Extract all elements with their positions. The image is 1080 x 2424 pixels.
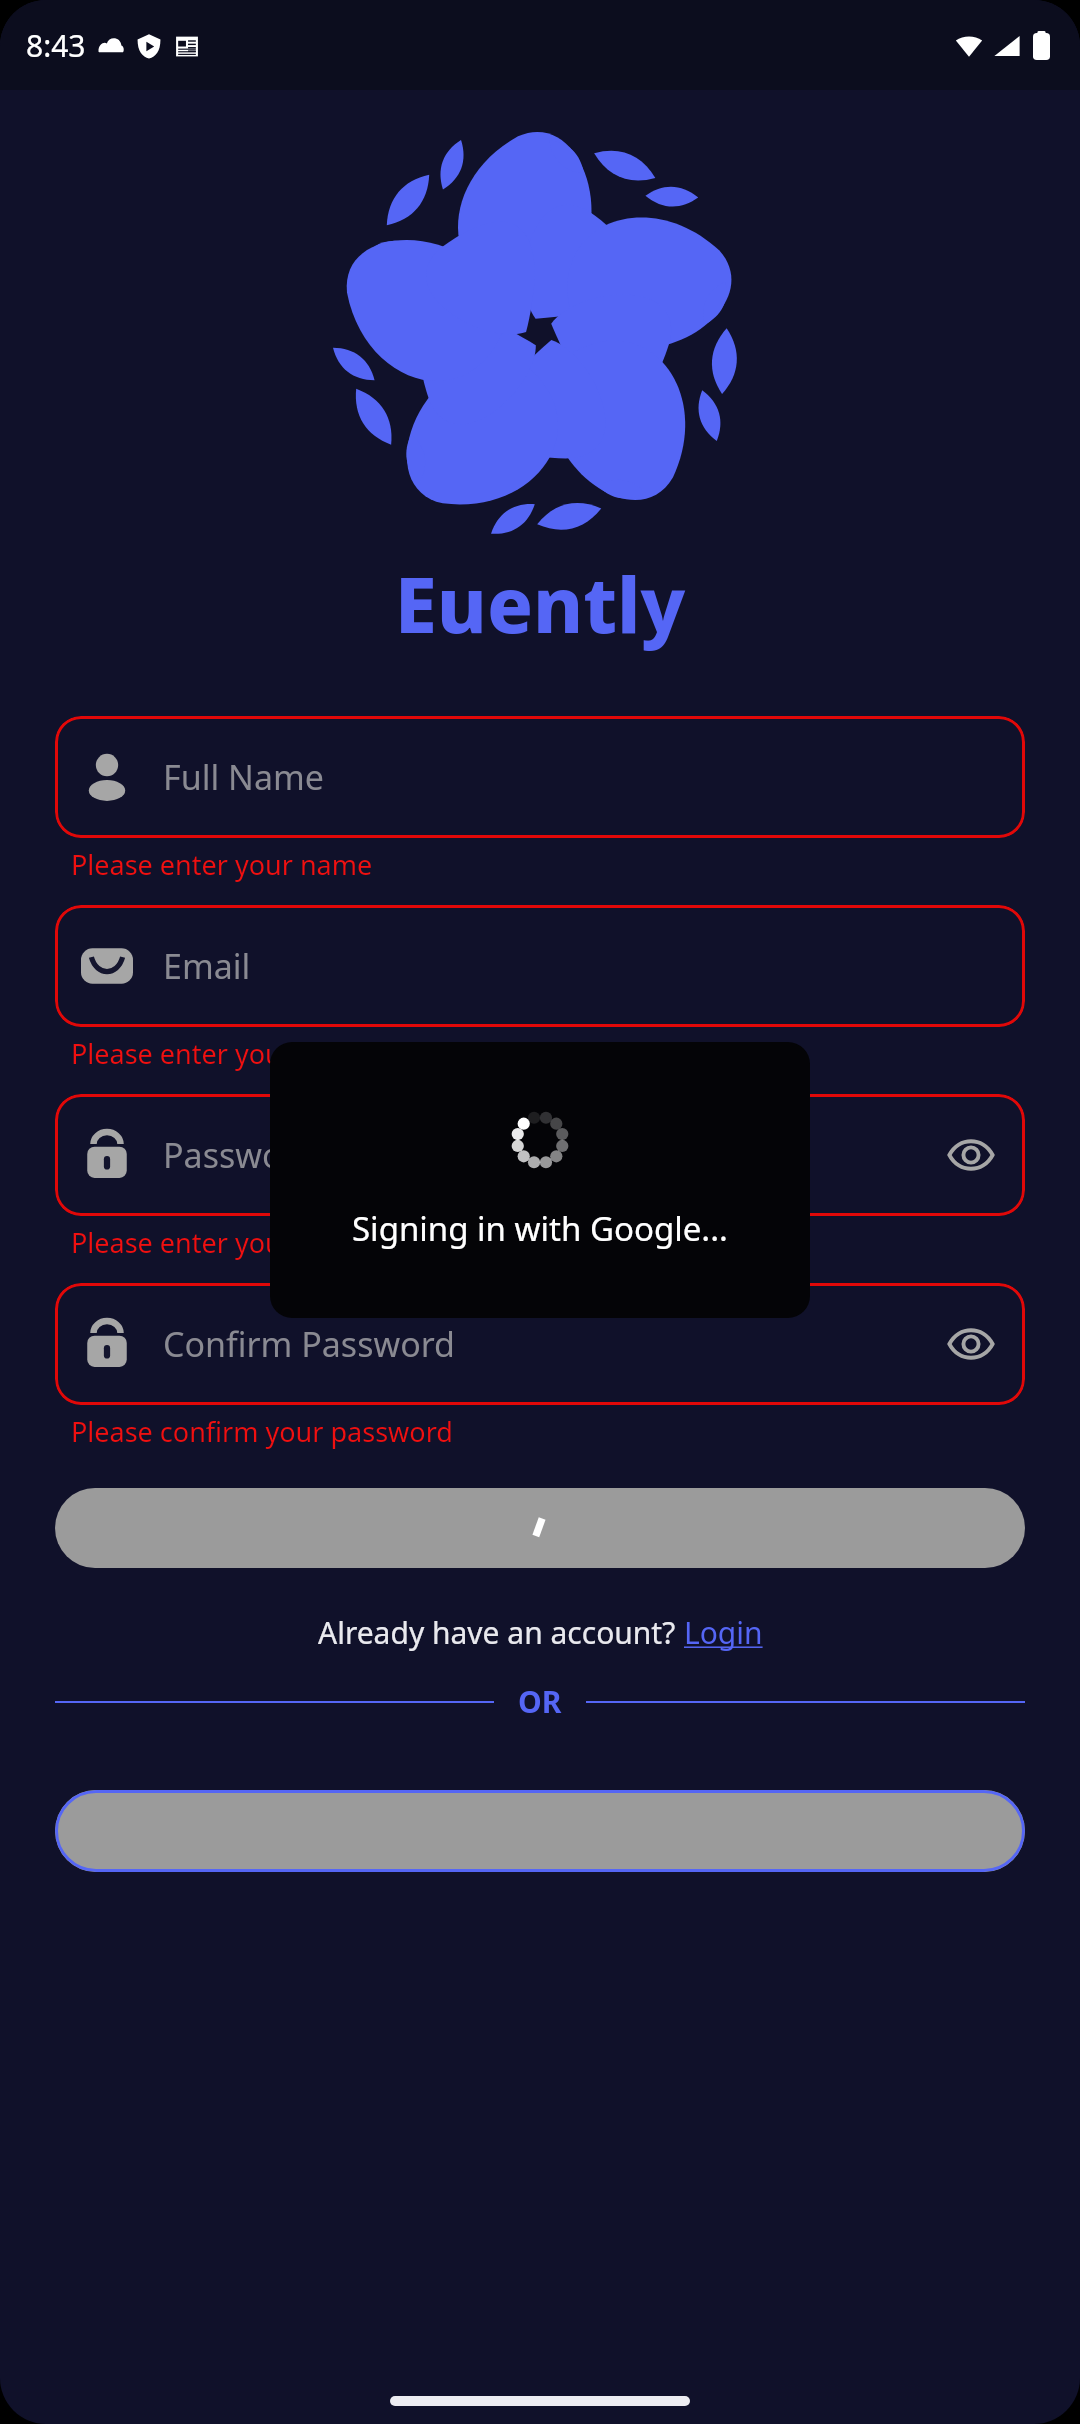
button[interactable]: Password xyxy=(55,1094,1025,1216)
staticText: Already have an account? xyxy=(318,1612,684,1653)
staticText: Signing in with Google... xyxy=(352,1206,728,1251)
button[interactable]: Email xyxy=(55,905,1025,1027)
staticText: Login xyxy=(684,1612,763,1653)
button[interactable]: Sign Up xyxy=(55,1488,1025,1568)
staticText: Please enter your name xyxy=(71,846,373,883)
staticText: Confirm Password xyxy=(163,1321,943,1367)
button[interactable]: Confirm Password xyxy=(55,1283,1025,1405)
staticText: Please enter your email xyxy=(71,1035,370,1072)
staticText: 8:43 xyxy=(26,25,86,66)
staticText: Full Name xyxy=(163,754,999,800)
staticText: Euently xyxy=(0,552,1080,656)
button[interactable]: Show password xyxy=(943,1316,999,1372)
button[interactable]: Sign up with Google xyxy=(55,1790,1025,1872)
staticText: Please confirm your password xyxy=(71,1413,453,1450)
staticText: Password xyxy=(163,1132,943,1178)
button[interactable]: Show password xyxy=(943,1127,999,1183)
button[interactable]: Full Name xyxy=(55,716,1025,838)
staticText: OR xyxy=(518,1681,562,1722)
button[interactable]: Login xyxy=(684,1612,763,1653)
staticText: Please enter your password xyxy=(71,1224,423,1261)
staticText: Email xyxy=(163,943,999,989)
